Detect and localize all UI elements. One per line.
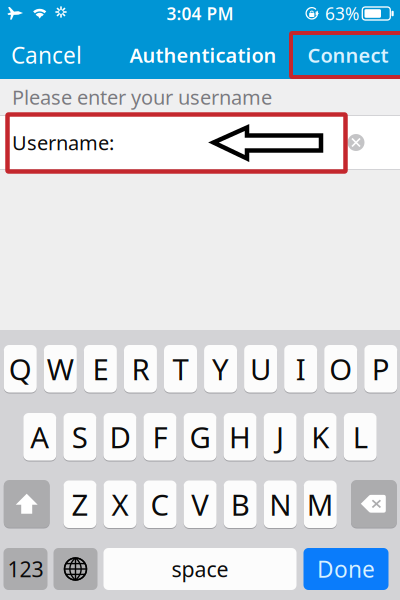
staticText: Done xyxy=(317,554,375,584)
button[interactable]: Delete xyxy=(351,480,397,527)
staticText: X xyxy=(111,485,128,524)
button[interactable]: V xyxy=(184,480,217,528)
staticText: G xyxy=(189,417,210,456)
staticText: E xyxy=(92,349,108,388)
staticText: 63% xyxy=(325,2,359,25)
button[interactable]: space xyxy=(103,548,296,590)
staticText: P xyxy=(372,349,390,388)
staticText: Z xyxy=(71,485,88,524)
button[interactable]: Connect xyxy=(303,35,393,75)
staticText: Q xyxy=(9,349,32,388)
button[interactable]: Q xyxy=(4,344,37,393)
button[interactable]: S xyxy=(63,412,96,461)
button[interactable]: Next keyboard xyxy=(53,548,97,590)
staticText: N xyxy=(269,485,291,524)
button[interactable]: Done xyxy=(303,548,388,590)
staticText: B xyxy=(231,485,250,524)
button[interactable]: I xyxy=(284,344,317,393)
button[interactable]: X xyxy=(103,480,136,528)
staticText: O xyxy=(329,349,352,388)
staticText: Cancel xyxy=(11,40,82,70)
staticText: A xyxy=(30,417,49,456)
staticText: L xyxy=(353,417,368,456)
staticText: Please enter your username xyxy=(12,84,272,110)
button[interactable]: Z xyxy=(63,480,96,528)
staticText: I xyxy=(296,349,306,388)
staticText: 123 xyxy=(7,555,43,583)
button[interactable]: J xyxy=(264,412,297,461)
button[interactable]: T xyxy=(164,344,197,393)
staticText: S xyxy=(72,417,88,456)
staticText: 3:04 PM xyxy=(166,2,233,25)
button[interactable]: C xyxy=(144,480,177,528)
button[interactable]: H xyxy=(224,412,257,461)
staticText: Connect xyxy=(307,42,388,68)
button[interactable]: Clear text xyxy=(344,130,368,154)
staticText: H xyxy=(229,417,251,456)
staticText: R xyxy=(131,349,149,388)
staticText: Y xyxy=(212,349,229,388)
button[interactable]: Shift xyxy=(4,480,50,527)
button[interactable]: 123 xyxy=(3,548,47,590)
staticText: C xyxy=(151,485,170,524)
button[interactable]: N xyxy=(264,480,297,528)
button[interactable]: L xyxy=(344,412,377,461)
staticText: W xyxy=(47,349,74,388)
staticText: V xyxy=(191,485,209,524)
button[interactable]: P xyxy=(364,344,397,393)
staticText: Username: xyxy=(12,129,114,156)
button[interactable]: Cancel xyxy=(11,37,83,73)
staticText: J xyxy=(276,417,284,456)
button[interactable]: F xyxy=(143,412,176,461)
staticText: space xyxy=(171,555,228,583)
button[interactable]: R xyxy=(124,344,157,393)
staticText: Authentication xyxy=(129,42,276,68)
button[interactable]: G xyxy=(183,412,216,461)
button[interactable]: Y xyxy=(204,344,237,393)
staticText: K xyxy=(311,417,329,456)
staticText: M xyxy=(307,485,334,524)
button[interactable]: B xyxy=(224,480,257,528)
button[interactable]: U xyxy=(244,344,277,393)
staticText: F xyxy=(152,417,167,456)
button[interactable]: K xyxy=(304,412,337,461)
button[interactable]: W xyxy=(44,344,77,393)
button[interactable]: E xyxy=(84,344,117,393)
button[interactable]: A xyxy=(23,412,56,461)
button[interactable]: O xyxy=(324,344,357,393)
button[interactable]: Authentication xyxy=(123,37,283,73)
staticText: D xyxy=(109,417,130,456)
staticText: T xyxy=(172,349,188,388)
button[interactable]: Username: xyxy=(0,115,400,170)
button[interactable]: M xyxy=(304,480,337,528)
staticText: U xyxy=(250,349,271,388)
button[interactable]: D xyxy=(103,412,136,461)
